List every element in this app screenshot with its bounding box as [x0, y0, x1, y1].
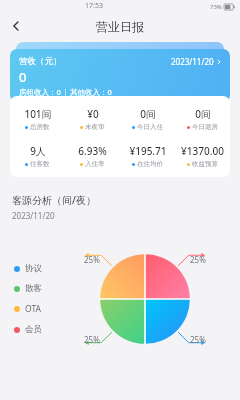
staticText: 0 [19, 68, 27, 86]
button[interactable]: ¥1370.00 [175, 144, 230, 168]
staticText: 住客数 [30, 160, 50, 168]
staticText: OTA [25, 303, 41, 315]
staticText: 今日入住 [137, 123, 163, 131]
button[interactable]: 9人 [10, 144, 65, 168]
button[interactable]: 会员 [14, 324, 42, 335]
staticText: 25% [84, 334, 100, 345]
staticText: 在住均价 [137, 160, 163, 168]
staticText: 25% [190, 254, 206, 265]
staticText: 0间 [140, 107, 156, 121]
staticText: 营业日报 [96, 19, 144, 34]
staticText: 总房数 [30, 123, 50, 131]
staticText: 入住率 [85, 160, 105, 168]
staticText: 73% [210, 3, 222, 11]
staticText: ¥1370.00 [181, 144, 224, 158]
button[interactable]: Back [4, 14, 28, 38]
staticText: 客源分析（间/夜） [12, 193, 96, 207]
staticText: 9人 [30, 144, 46, 158]
staticText: 房租收入：0 [19, 87, 61, 97]
staticText: 今日退房 [192, 123, 218, 131]
staticText: 17:53 [85, 1, 103, 11]
staticText: 101间 [24, 107, 52, 121]
staticText: 0间 [195, 107, 211, 121]
staticText: 其他收入：0 [70, 87, 112, 97]
button[interactable]: 0间 [175, 107, 230, 131]
staticText: 2023/11/20 [171, 56, 214, 67]
staticText: ¥0 [87, 107, 99, 121]
button[interactable]: 0间 [120, 107, 175, 131]
staticText: 协议 [25, 263, 42, 274]
staticText: 25% [84, 254, 100, 265]
staticText: 收益预算 [192, 160, 218, 168]
staticText: ¥195.71 [129, 144, 167, 158]
button[interactable]: 101间 [10, 107, 65, 131]
button[interactable]: ¥195.71 [120, 144, 175, 168]
staticText: 6.93% [78, 144, 107, 158]
button[interactable]: 营收（元） [10, 49, 230, 102]
staticText: 未夜审 [85, 123, 105, 131]
button[interactable]: ¥0 [65, 107, 120, 131]
button[interactable]: OTA [14, 303, 41, 315]
staticText: 25% [190, 334, 206, 345]
staticText: 会员 [25, 324, 42, 335]
button[interactable]: 散客 [14, 283, 42, 294]
staticText: 营收（元） [19, 56, 62, 67]
staticText: 2023/11/20 [12, 210, 55, 221]
button[interactable]: 6.93% [65, 144, 120, 168]
staticText: 散客 [25, 283, 42, 294]
button[interactable]: 协议 [14, 263, 42, 274]
